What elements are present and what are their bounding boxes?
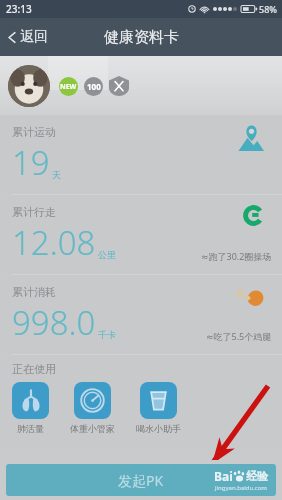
staticText: 998.0 [12, 300, 96, 345]
staticText: 体重小管家 [70, 423, 115, 434]
staticText: 累计行走 [12, 205, 56, 219]
staticText: 经验 [246, 469, 268, 483]
staticText: Bai [214, 468, 233, 484]
button[interactable]: Avatar [8, 65, 50, 107]
staticText: 喝水小助手 [136, 423, 181, 434]
button[interactable]: Score 100 badge [84, 77, 103, 96]
button[interactable]: 体重小管家 [70, 382, 115, 434]
staticText: 健康资料卡 [104, 28, 179, 47]
staticText: NEW [60, 82, 77, 92]
button[interactable]: 返回 [0, 22, 58, 52]
staticText: 肺活量 [17, 423, 44, 434]
staticText: 返回 [20, 28, 48, 46]
staticText: 19 [12, 140, 50, 185]
staticText: 12.08 [12, 220, 96, 265]
staticText: 58% [259, 3, 277, 15]
staticText: ≈跑了30.2圈操场 [201, 250, 272, 262]
button[interactable]: 累计行走 [0, 195, 282, 274]
button[interactable]: 累计运动 [0, 115, 282, 194]
staticText: 100 [87, 81, 101, 92]
button[interactable]: 肺活量 [12, 382, 49, 434]
staticText: 天 [52, 169, 61, 180]
staticText: 千卡 [98, 329, 116, 340]
button[interactable]: 喝水小助手 [136, 382, 181, 434]
staticText: ≈吃了5.5个鸡腿 [206, 330, 272, 342]
staticText: 累计消耗 [12, 285, 56, 299]
staticText: 23:13 [6, 2, 32, 16]
staticText: jingyan.baidu.com [215, 484, 267, 492]
button[interactable]: Diet badge [109, 76, 129, 96]
staticText: 累计运动 [12, 125, 56, 139]
staticText: 正在使用 [12, 362, 56, 376]
button[interactable]: 累计消耗 [0, 275, 282, 354]
button[interactable]: New badge [59, 77, 78, 96]
staticText: 发起PK [118, 471, 164, 490]
staticText: 公里 [98, 249, 116, 260]
button[interactable]: 发起PK [6, 464, 276, 496]
